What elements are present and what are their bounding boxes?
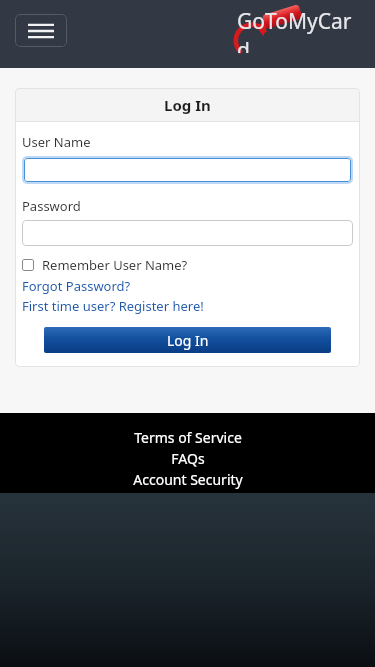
button[interactable]: Remember User Name?: [22, 256, 188, 274]
button[interactable]: Account Security: [133, 469, 243, 490]
staticText: Password: [22, 197, 81, 215]
button[interactable]: Forgot Password?: [22, 277, 131, 295]
staticText: GoToMyCard: [237, 7, 363, 53]
button[interactable]: FAQs: [171, 448, 205, 469]
staticText: Remember User Name?: [42, 256, 188, 274]
button[interactable]: Terms of Service: [134, 427, 242, 448]
button[interactable]: First time user? Register here!: [22, 297, 204, 315]
staticText: Log In: [167, 331, 209, 350]
button[interactable]: Menu: [15, 14, 67, 47]
button[interactable]: [24, 158, 351, 182]
staticText: Log In: [164, 95, 211, 115]
button[interactable]: Log In: [44, 327, 331, 353]
staticText: User Name: [22, 133, 91, 151]
button[interactable]: [22, 220, 353, 246]
